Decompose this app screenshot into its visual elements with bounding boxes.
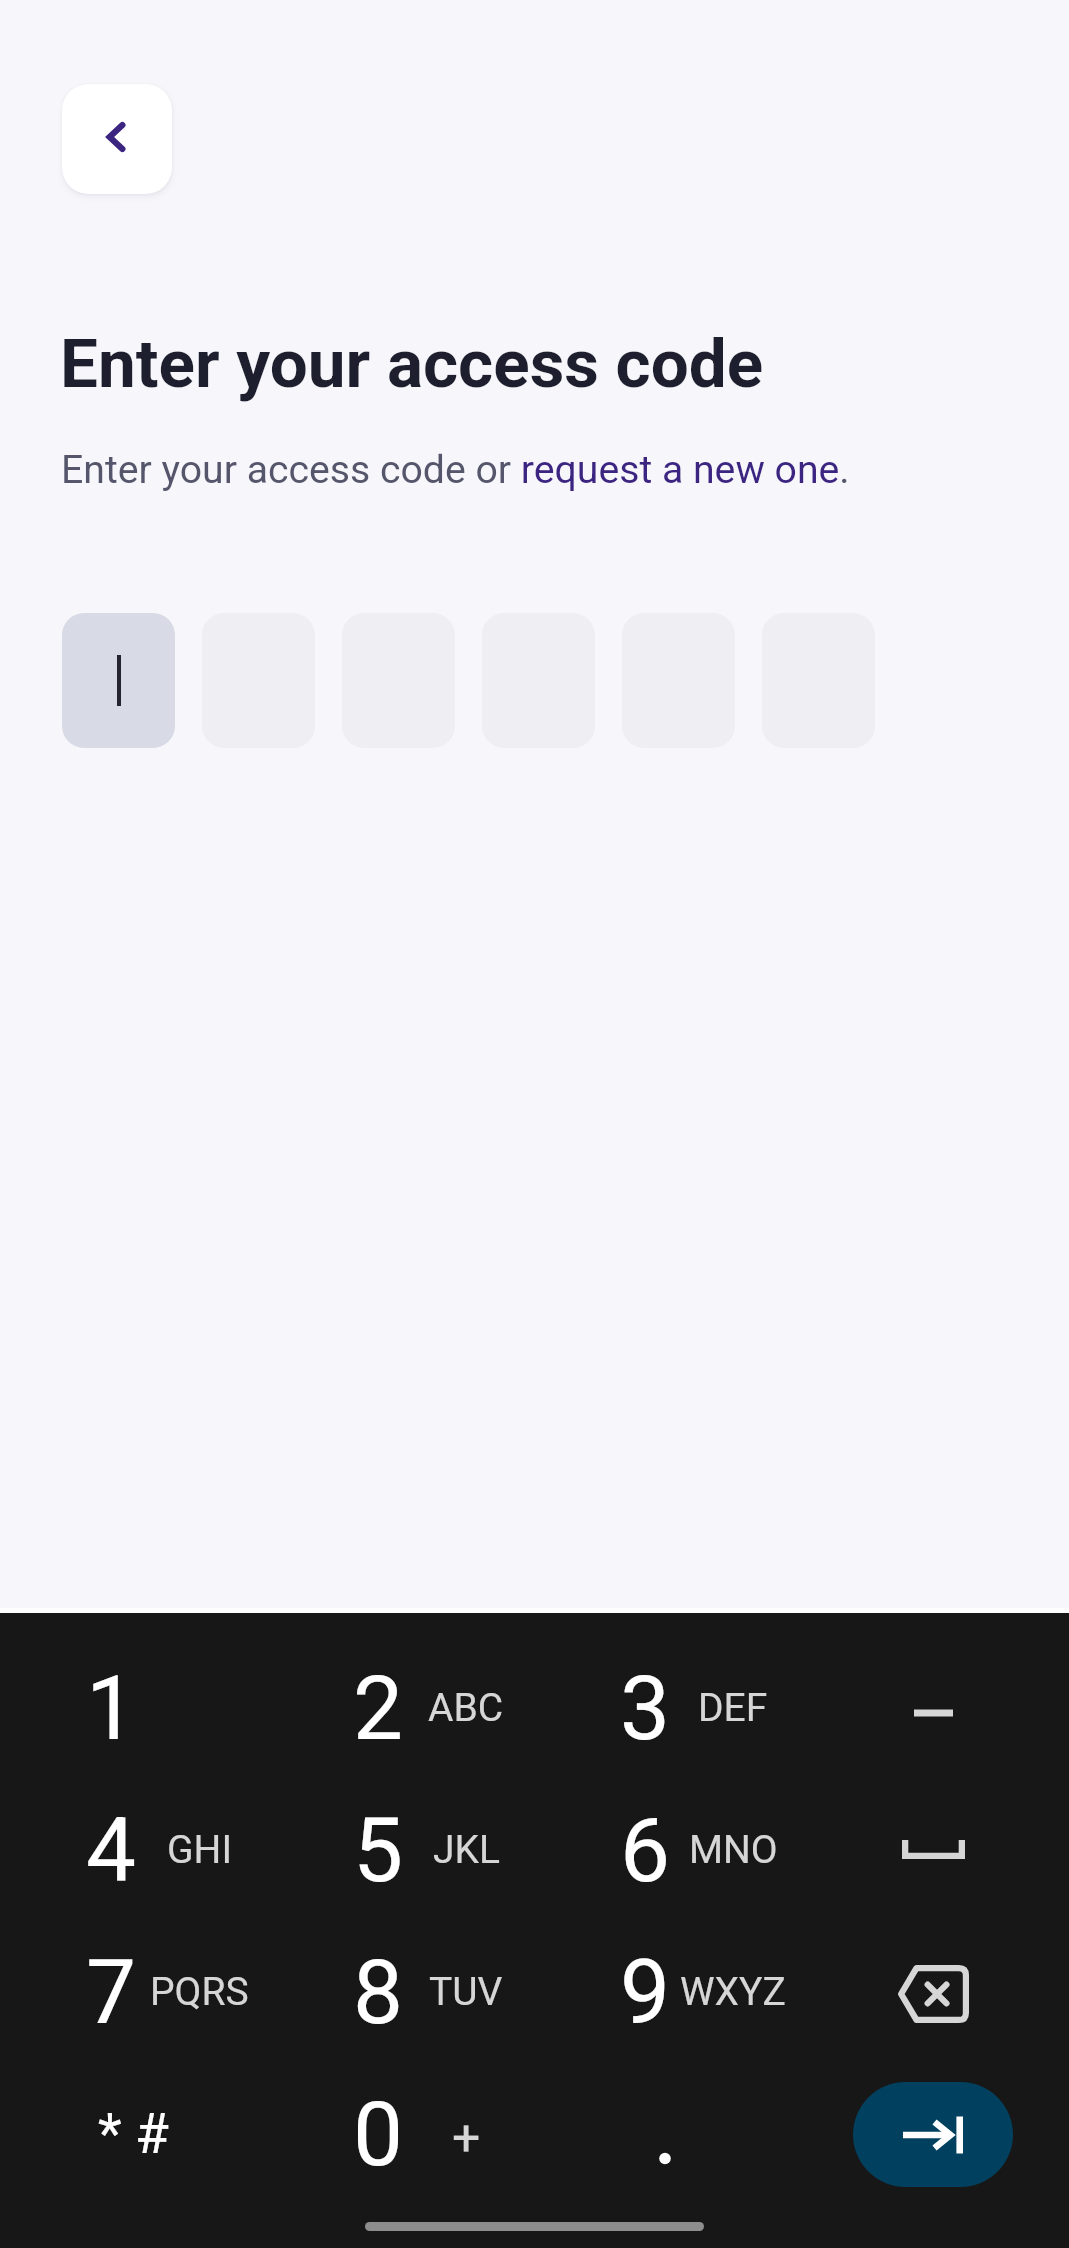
staticText: ABC — [428, 1685, 504, 1731]
staticText: 9 — [620, 1940, 671, 2044]
staticText: TUV — [429, 1969, 503, 2015]
staticText: PQRS — [150, 1969, 249, 2015]
staticText: 4 — [86, 1798, 137, 1902]
button[interactable]: Next — [853, 2082, 1013, 2187]
button[interactable]: Key 4 — [0, 1779, 267, 1921]
staticText: 3 — [620, 1656, 671, 1760]
staticText: MNO — [689, 1827, 778, 1873]
button[interactable]: Key 0 — [267, 2063, 534, 2205]
staticText: * — [98, 2102, 122, 2166]
staticText: GHI — [167, 1827, 232, 1873]
button[interactable]: Star and hash — [0, 2063, 267, 2205]
button[interactable]: Code digit 1 — [62, 613, 175, 748]
staticText: 2 — [353, 1656, 404, 1760]
staticText: 7 — [86, 1940, 137, 2044]
button[interactable]: Key 5 — [267, 1779, 534, 1921]
button[interactable]: Backspace — [802, 1921, 1069, 2063]
button[interactable]: Key 9 — [535, 1921, 802, 2063]
staticText: # — [135, 2102, 169, 2166]
button[interactable]: Key 7 — [0, 1921, 267, 2063]
staticText: 5 — [353, 1798, 404, 1902]
button[interactable]: Key 2 — [267, 1637, 534, 1779]
staticText: 0 — [353, 2082, 404, 2186]
staticText: WXYZ — [680, 1969, 786, 2015]
button[interactable]: Space — [802, 1779, 1069, 1921]
button[interactable]: Back — [62, 84, 172, 194]
staticText: Enter your access code — [60, 324, 764, 403]
staticText: + — [452, 2109, 481, 2168]
button[interactable]: Key 8 — [267, 1921, 534, 2063]
staticText: Enter your access code or request a new … — [61, 447, 850, 493]
button[interactable]: Key 3 — [535, 1637, 802, 1779]
button[interactable]: Period — [605, 2063, 725, 2205]
staticText: JKL — [433, 1827, 500, 1873]
button[interactable]: Minus — [802, 1637, 1069, 1779]
staticText: 1 — [86, 1656, 137, 1760]
button[interactable]: Key 1 — [0, 1637, 267, 1779]
button[interactable]: Key 6 — [535, 1779, 802, 1921]
staticText: 6 — [620, 1798, 671, 1902]
staticText: 8 — [353, 1940, 404, 2044]
staticText: DEF — [698, 1685, 768, 1731]
